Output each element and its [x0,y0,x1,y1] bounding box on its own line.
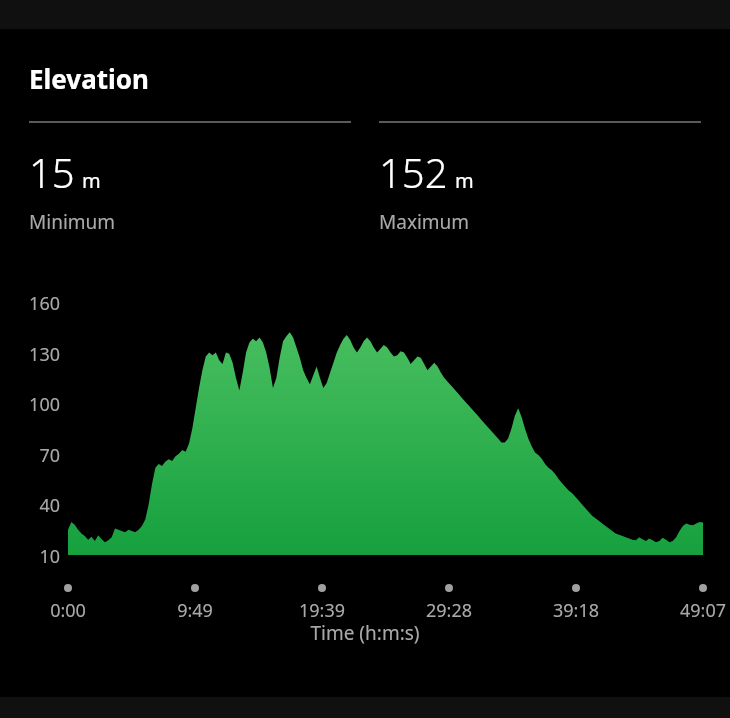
staticText: 0:00 [23,598,113,623]
staticText: 9:49 [150,598,240,623]
staticText: Time (h:m:s) [0,620,730,646]
staticText: Elevation [29,61,149,96]
staticText: 39:18 [531,598,621,623]
staticText: 49:07 [658,598,730,623]
staticText: 160 [0,291,60,316]
button[interactable]: Elevation [0,29,730,96]
button[interactable]: 15 [29,121,351,235]
staticText: 15 [29,145,75,199]
staticText: m [455,167,474,194]
staticText: m [82,167,101,194]
staticText: 152 [379,145,448,199]
staticText: 130 [0,342,60,367]
staticText: 10 [0,544,60,569]
staticText: 70 [0,443,60,468]
staticText: Minimum [29,209,116,235]
staticText: Maximum [379,209,470,235]
staticText: 40 [0,493,60,518]
other: Elevation chart [0,280,730,620]
staticText: 29:28 [404,598,494,623]
staticText: 100 [0,392,60,417]
button[interactable]: 152 [379,121,701,235]
staticText: 19:39 [277,598,367,623]
